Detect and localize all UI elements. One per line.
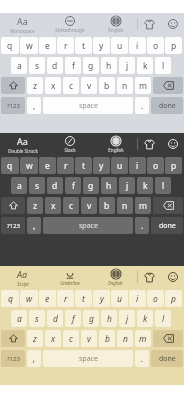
button[interactable]: m	[135, 197, 151, 214]
button[interactable]: u	[111, 37, 128, 54]
button[interactable]: x	[45, 330, 61, 347]
button[interactable]: .	[135, 217, 149, 234]
button[interactable]: y	[93, 157, 110, 174]
button[interactable]: n	[117, 77, 133, 94]
button[interactable]: z	[27, 330, 43, 347]
button[interactable]: done	[151, 97, 183, 114]
button[interactable]: j	[119, 310, 135, 327]
button[interactable]: Slash	[45, 133, 94, 155]
button[interactable]: v	[81, 330, 97, 347]
button[interactable]: y	[93, 290, 110, 307]
button[interactable]: English	[94, 13, 137, 35]
button[interactable]: h	[101, 57, 117, 74]
button[interactable]: Stickers	[138, 13, 161, 35]
button[interactable]: Backspace	[153, 77, 183, 94]
button[interactable]: Backspace	[153, 197, 183, 214]
button[interactable]: b	[99, 197, 115, 214]
button[interactable]: Aa	[0, 13, 45, 35]
button[interactable]: Stickers	[138, 266, 161, 288]
button[interactable]: u	[111, 157, 128, 174]
button[interactable]: Shift	[1, 77, 25, 94]
button[interactable]: d	[47, 57, 63, 74]
button[interactable]: a	[11, 177, 27, 194]
button[interactable]: h	[101, 177, 117, 194]
button[interactable]: c	[63, 197, 79, 214]
button[interactable]: t	[75, 37, 92, 54]
button[interactable]: .	[135, 350, 149, 367]
button[interactable]: e	[39, 290, 56, 307]
button[interactable]: s	[29, 57, 45, 74]
button[interactable]: d	[47, 310, 63, 327]
button[interactable]: Emoji	[161, 13, 184, 35]
button[interactable]: u	[111, 290, 128, 307]
button[interactable]: Strikethrough	[45, 13, 94, 35]
button[interactable]: space	[43, 350, 133, 367]
button[interactable]: k	[137, 310, 153, 327]
button[interactable]: Shift	[1, 330, 25, 347]
button[interactable]: k	[137, 177, 153, 194]
button[interactable]: q	[1, 37, 19, 54]
button[interactable]: m	[135, 77, 151, 94]
button[interactable]: f	[65, 177, 81, 194]
button[interactable]: t	[75, 157, 92, 174]
button[interactable]: z	[27, 197, 43, 214]
button[interactable]: w	[20, 37, 38, 54]
button[interactable]: s	[29, 310, 45, 327]
button[interactable]: g	[83, 310, 99, 327]
button[interactable]: Emoji	[161, 266, 184, 288]
button[interactable]: ,	[27, 217, 41, 234]
button[interactable]: l	[155, 177, 171, 194]
button[interactable]: p	[165, 157, 182, 174]
button[interactable]: d	[47, 177, 63, 194]
button[interactable]: c	[63, 77, 79, 94]
button[interactable]: n	[117, 197, 133, 214]
button[interactable]: o	[147, 157, 164, 174]
button[interactable]: space	[43, 97, 133, 114]
button[interactable]: ,	[27, 97, 41, 114]
button[interactable]: .	[135, 97, 149, 114]
button[interactable]: i	[129, 290, 146, 307]
button[interactable]: x	[45, 197, 61, 214]
button[interactable]: r	[57, 290, 74, 307]
button[interactable]: t	[75, 290, 92, 307]
button[interactable]: j	[119, 177, 135, 194]
button[interactable]: r	[57, 157, 74, 174]
button[interactable]: p	[165, 290, 182, 307]
button[interactable]: e	[39, 157, 56, 174]
button[interactable]: q	[1, 157, 19, 174]
button[interactable]: l	[155, 57, 171, 74]
button[interactable]: o	[147, 290, 164, 307]
button[interactable]: c	[63, 330, 79, 347]
button[interactable]: a	[11, 310, 27, 327]
button[interactable]: v	[81, 77, 97, 94]
button[interactable]: Shift	[1, 197, 25, 214]
button[interactable]: w	[20, 157, 38, 174]
button[interactable]: l	[155, 310, 171, 327]
button[interactable]: Emoji	[161, 133, 184, 155]
button[interactable]: m	[135, 330, 151, 347]
button[interactable]: h	[101, 310, 117, 327]
button[interactable]: q	[1, 290, 19, 307]
button[interactable]: y	[93, 37, 110, 54]
button[interactable]: i	[129, 37, 146, 54]
button[interactable]: v	[81, 197, 97, 214]
button[interactable]: g	[83, 177, 99, 194]
button[interactable]: i	[129, 157, 146, 174]
button[interactable]: space	[43, 217, 133, 234]
button[interactable]: j	[119, 57, 135, 74]
button[interactable]: Aa	[0, 266, 45, 288]
button[interactable]: English	[94, 266, 137, 288]
button[interactable]: r	[57, 37, 74, 54]
button[interactable]: f	[65, 57, 81, 74]
button[interactable]: done	[151, 350, 183, 367]
button[interactable]: z	[27, 77, 43, 94]
button[interactable]: p	[165, 37, 182, 54]
button[interactable]: Backspace	[153, 330, 183, 347]
button[interactable]: s	[29, 177, 45, 194]
button[interactable]: b	[99, 330, 115, 347]
button[interactable]: g	[83, 57, 99, 74]
button[interactable]: Underline	[45, 266, 94, 288]
button[interactable]: f	[65, 310, 81, 327]
button[interactable]: x	[45, 77, 61, 94]
button[interactable]: ?123	[1, 217, 25, 234]
